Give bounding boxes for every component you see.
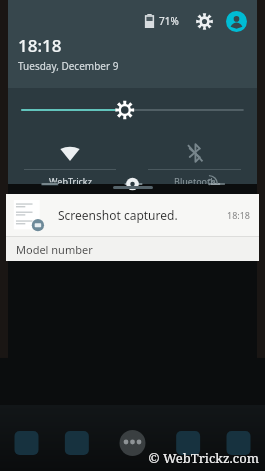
staticText: Screenshot captured. — [58, 207, 227, 223]
staticText: WebTrickz — [49, 175, 92, 184]
button[interactable]: Brightness — [8, 88, 257, 132]
button[interactable]: 18:18 — [18, 34, 119, 73]
button[interactable]: Model number — [6, 237, 259, 261]
button[interactable]: Screenshot captured. — [6, 194, 259, 236]
staticText: Bluetooth — [174, 175, 216, 184]
button[interactable]: User profile — [223, 8, 249, 34]
staticText: © WebTrickz.com — [148, 449, 259, 467]
staticText: 18:18 — [227, 209, 251, 221]
button[interactable]: Bluetooth — [132, 132, 257, 184]
staticText: Tuesday, December 9 — [18, 59, 119, 73]
staticText: 18:18 — [18, 34, 62, 57]
button[interactable]: Settings — [191, 8, 217, 34]
staticText: 71% — [159, 14, 179, 28]
button[interactable]: Collapse — [113, 186, 153, 189]
staticText: Model number — [16, 242, 93, 257]
button[interactable]: WebTrickz — [8, 132, 132, 184]
